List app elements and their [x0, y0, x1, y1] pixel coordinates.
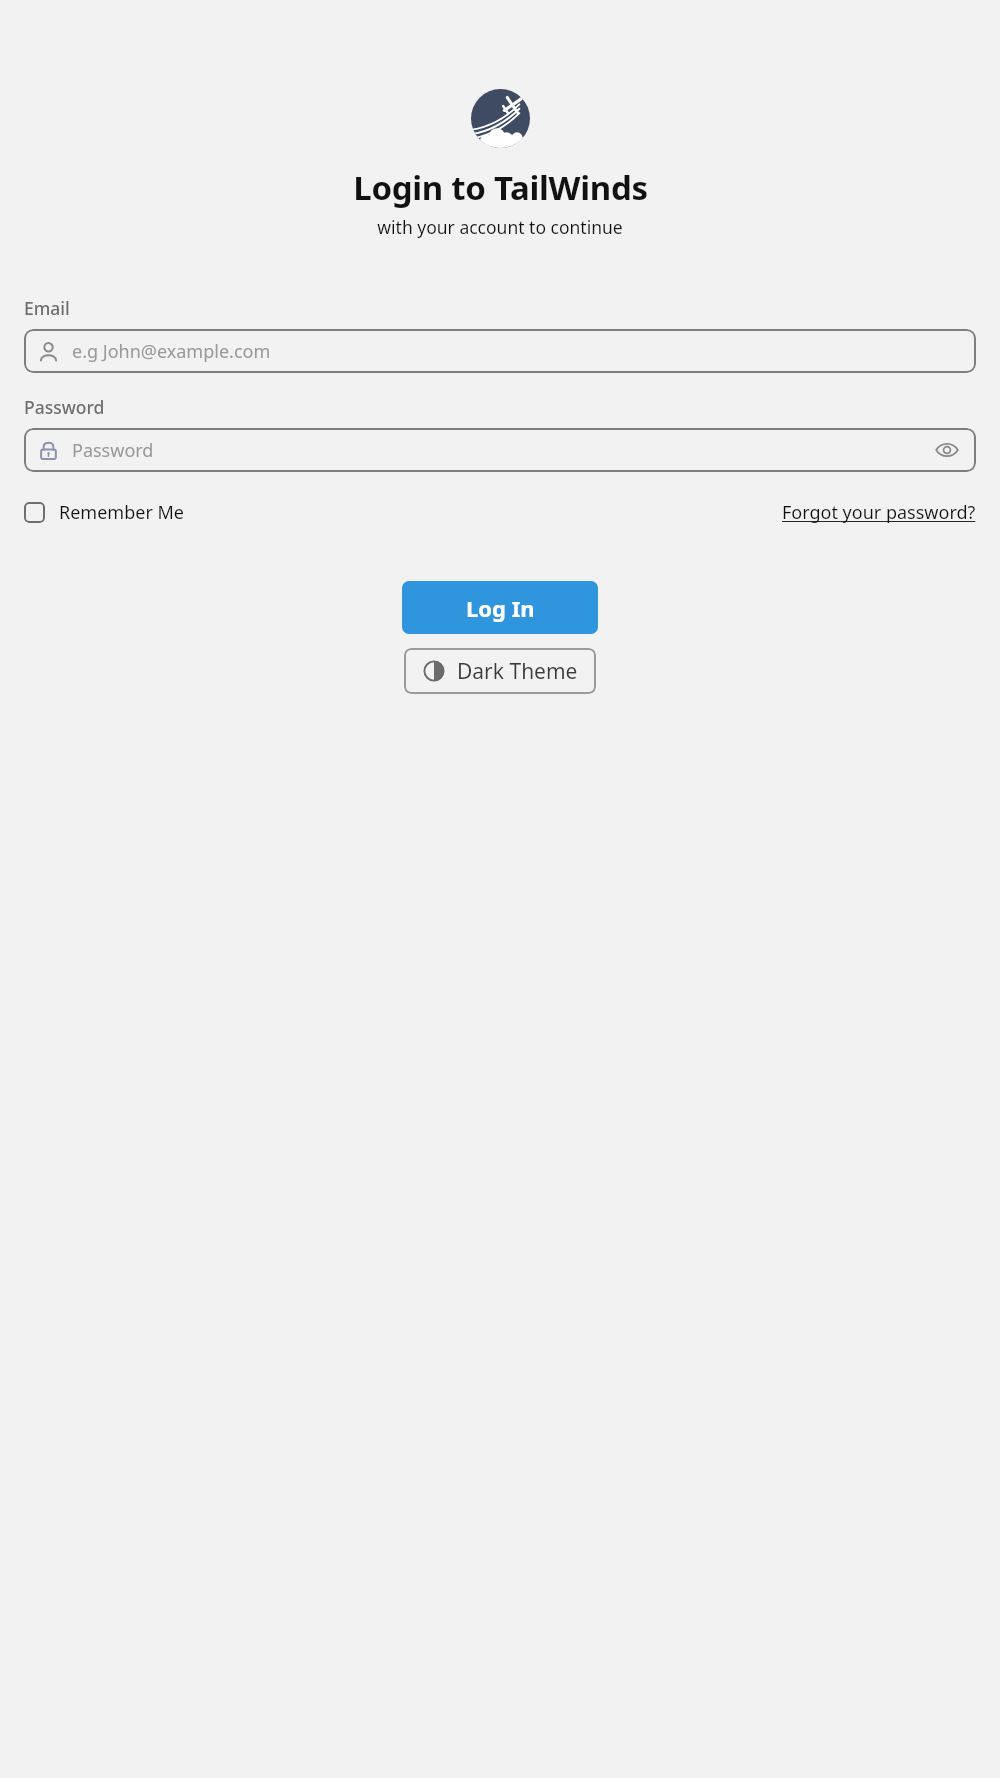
button[interactable]: Remember Me [24, 498, 184, 527]
button[interactable]: Password [24, 428, 976, 472]
staticText: Email [24, 296, 70, 320]
staticText: Log In [466, 593, 535, 623]
staticText: Remember Me [59, 500, 184, 525]
staticText: Password [72, 438, 930, 463]
button[interactable]: Show password [930, 433, 964, 467]
button[interactable]: Forgot your password? [782, 498, 976, 527]
staticText: Login to TailWinds [353, 165, 648, 210]
staticText: e.g John@example.com [72, 339, 271, 364]
button[interactable]: Dark Theme [404, 648, 596, 694]
staticText: Dark Theme [457, 657, 578, 686]
staticText: with your account to continue [377, 215, 623, 239]
button[interactable]: e.g John@example.com [24, 329, 976, 373]
button[interactable]: Log In [402, 581, 598, 634]
staticText: Password [24, 395, 105, 419]
staticText: Forgot your password? [782, 500, 976, 525]
